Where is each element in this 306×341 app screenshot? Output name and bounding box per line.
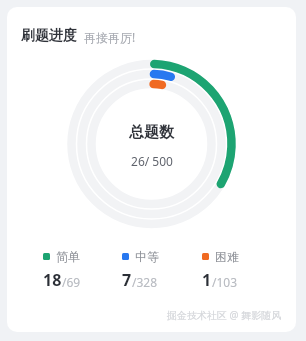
button[interactable]: 困难 [202, 249, 278, 291]
staticText: 刷题进度 [21, 27, 77, 45]
staticText: 中等 [135, 249, 159, 264]
button[interactable]: 简单 [43, 249, 122, 291]
staticText: 简单 [56, 249, 80, 264]
staticText: 18 [43, 269, 62, 291]
staticText: 困难 [215, 249, 239, 264]
staticText: 再接再厉! [84, 29, 136, 45]
button[interactable]: 刷题进度 [21, 27, 136, 45]
staticText: 1 [202, 269, 212, 291]
staticText: 掘金技术社区 @ 舞影随风 [167, 308, 282, 322]
staticText: /103 [212, 274, 238, 290]
staticText: /328 [132, 274, 158, 290]
staticText: 7 [122, 269, 132, 291]
button[interactable]: 中等 [122, 249, 202, 291]
staticText: 26/ 500 [131, 153, 173, 169]
staticText: 总题数 [129, 123, 174, 142]
staticText: /69 [62, 274, 81, 290]
